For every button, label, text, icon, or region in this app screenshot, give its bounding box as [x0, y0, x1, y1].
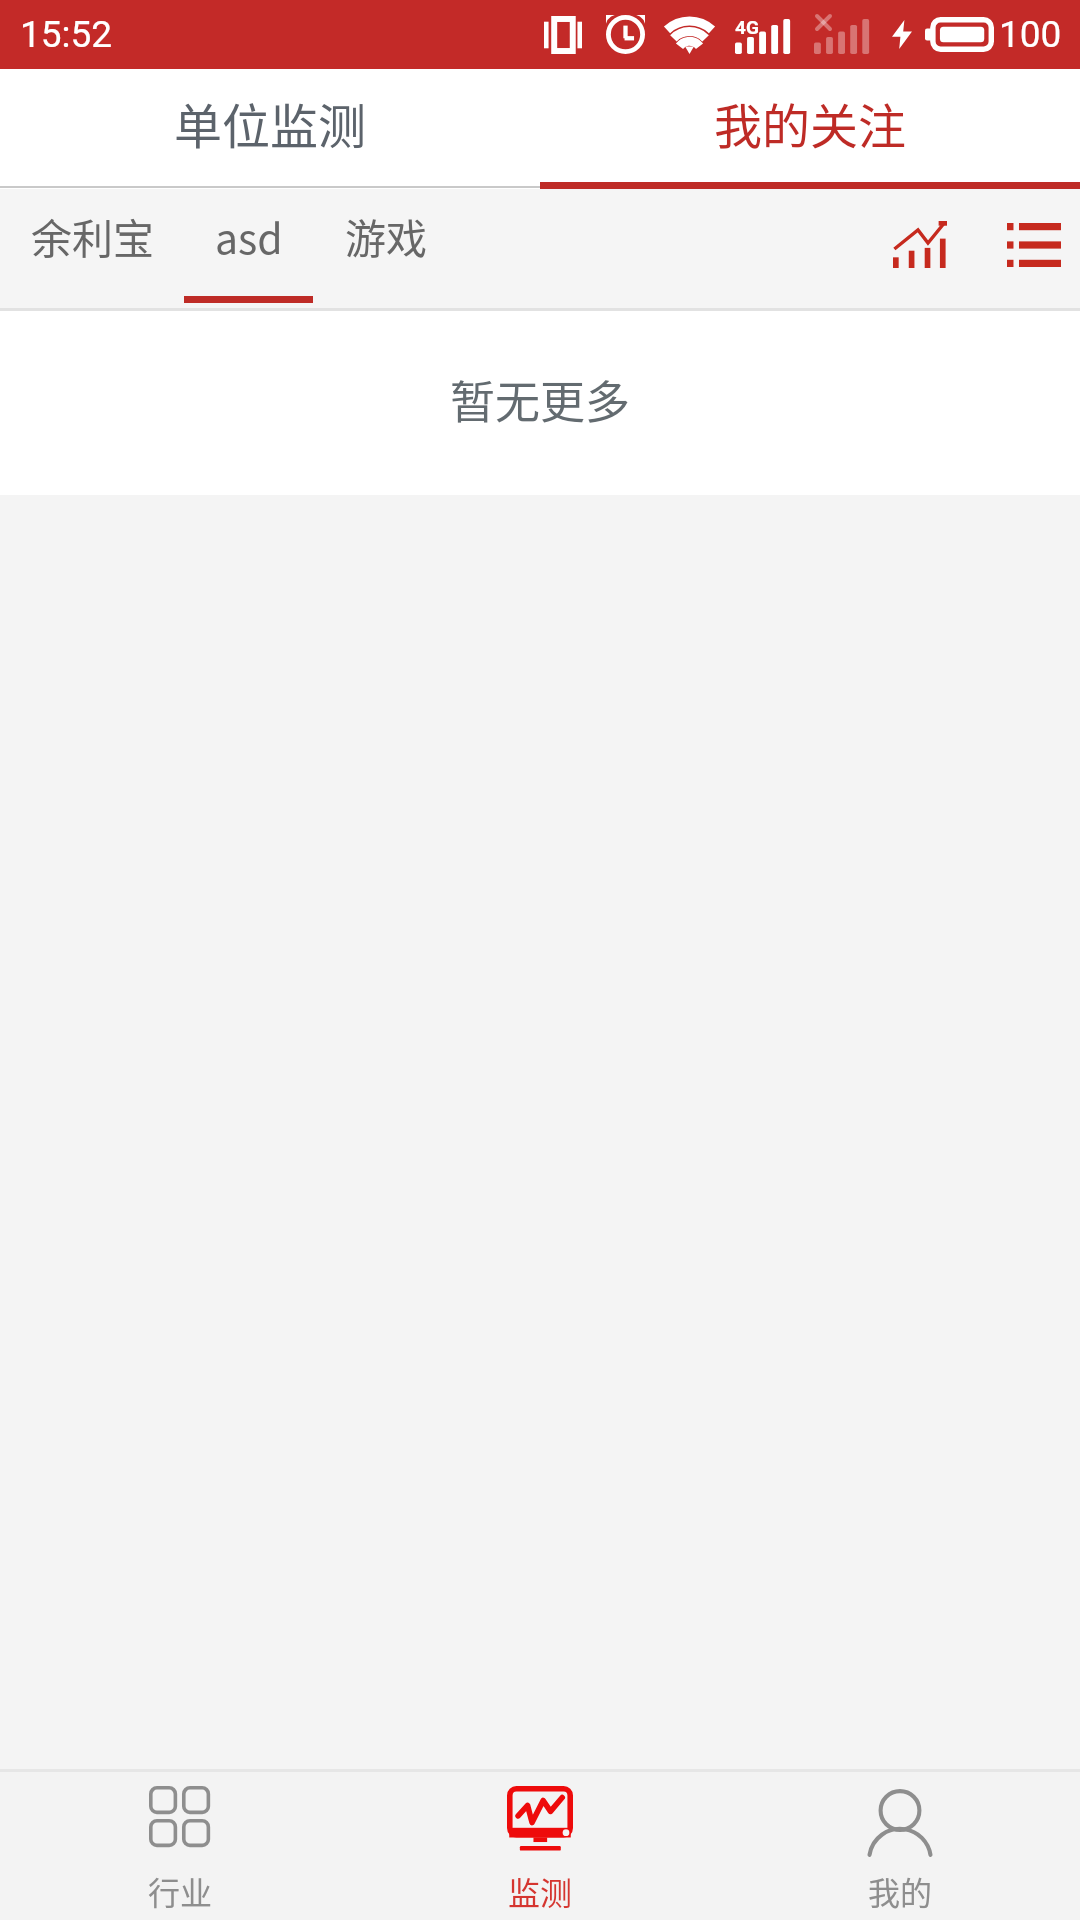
staticText: 游戏: [345, 206, 427, 265]
staticText: 我的: [868, 1868, 933, 1914]
staticText: 我的关注: [714, 88, 907, 158]
staticText: 100: [999, 13, 1062, 56]
button[interactable]: 我的关注: [540, 69, 1080, 189]
staticText: 暂无更多: [450, 367, 631, 432]
staticText: 余利宝: [31, 206, 154, 265]
staticText: asd: [215, 206, 283, 265]
button[interactable]: 单位监测: [0, 69, 540, 189]
staticText: 单位监测: [174, 88, 367, 158]
button[interactable]: 余利宝: [0, 189, 184, 308]
button[interactable]: List view: [988, 189, 1080, 308]
button[interactable]: 监测: [360, 1772, 720, 1920]
button[interactable]: 我的: [720, 1772, 1080, 1920]
staticText: 15:52: [20, 13, 113, 56]
button[interactable]: 行业: [0, 1772, 360, 1920]
button[interactable]: 游戏: [313, 189, 459, 308]
staticText: 行业: [148, 1868, 213, 1914]
staticText: 4G: [735, 16, 759, 38]
button[interactable]: Chart view: [852, 189, 988, 308]
button[interactable]: asd: [184, 189, 313, 308]
staticText: 监测: [508, 1868, 573, 1914]
